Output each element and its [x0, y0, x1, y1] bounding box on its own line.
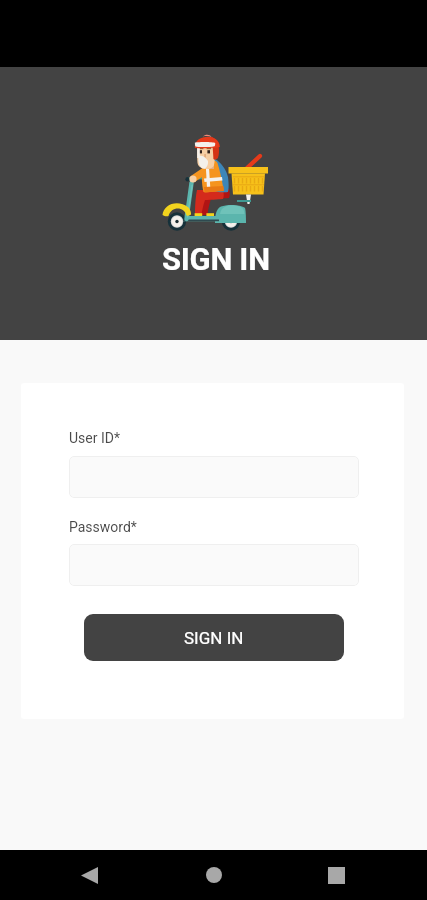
button[interactable]: SIGN IN — [84, 614, 344, 661]
button[interactable]: Home — [189, 850, 238, 900]
staticText: SIGN IN — [184, 628, 244, 648]
staticText: SIGN IN — [162, 241, 270, 277]
staticText: User ID* — [69, 430, 120, 446]
staticText: Password* — [69, 519, 137, 535]
button[interactable]: Back — [65, 850, 114, 900]
button[interactable]: Recent apps — [312, 850, 361, 900]
